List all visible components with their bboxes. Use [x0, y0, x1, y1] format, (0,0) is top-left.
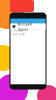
staticText: Choose your plan [12, 29, 25, 36]
staticText: Account details [17, 21, 31, 32]
